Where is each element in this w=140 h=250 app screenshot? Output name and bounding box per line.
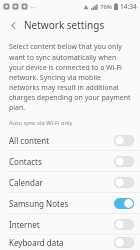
staticText: Internet [9, 219, 40, 230]
staticText: Contacts [9, 156, 42, 167]
button[interactable]: Back [6, 18, 20, 32]
staticText: All content [9, 135, 50, 146]
button[interactable]: Keyboard data [0, 235, 140, 250]
button[interactable]: Contacts [0, 151, 140, 171]
button[interactable]: All content [0, 130, 140, 150]
staticText: Samsung Notes [9, 198, 69, 209]
button[interactable]: Samsung Notes [0, 193, 140, 213]
button[interactable]: Internet [0, 214, 140, 234]
button[interactable]: Calendar [0, 172, 140, 192]
staticText: Keyboard data [9, 237, 64, 248]
staticText: Auto sync via Wi-Fi only [9, 119, 73, 127]
staticText: 76% [100, 3, 112, 11]
staticText: Network settings [24, 18, 105, 32]
staticText: 14:34 [120, 2, 137, 11]
staticText: Calendar [9, 177, 43, 188]
staticText: Select content below that you only want … [9, 42, 131, 112]
